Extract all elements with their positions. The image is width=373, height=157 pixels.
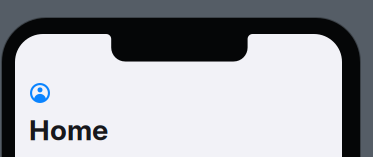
button[interactable]: Profile bbox=[30, 83, 50, 103]
staticText: Home bbox=[29, 113, 108, 143]
